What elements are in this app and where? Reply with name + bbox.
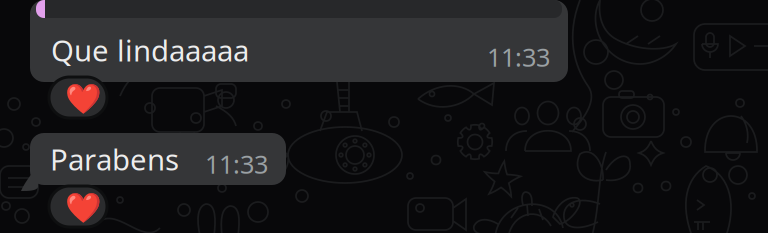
staticText: ❤️ [64,191,101,224]
button[interactable]: Heart reaction [49,186,107,227]
staticText: 11:33 [205,147,268,181]
staticText: Que lindaaaaa [51,30,249,69]
button[interactable]: Heart reaction [49,77,107,118]
button[interactable]: Parabens [30,133,286,185]
staticText: ❤️ [64,82,101,115]
staticText: Parabens [50,139,179,178]
staticText: 11:33 [487,40,550,74]
button[interactable]: Que lindaaaaa [30,0,568,82]
